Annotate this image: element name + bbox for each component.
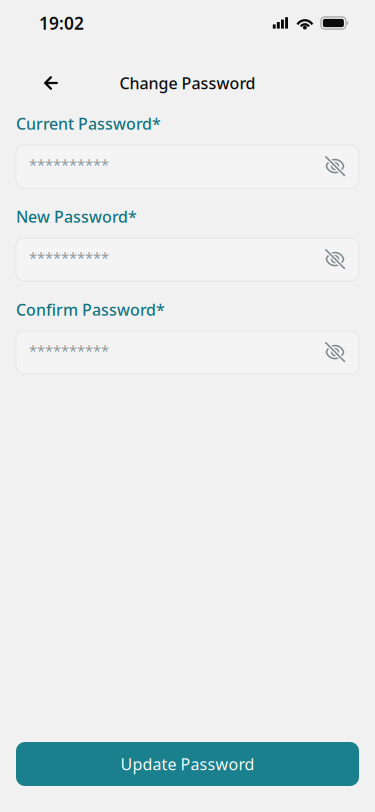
staticText: Change Password — [119, 72, 255, 94]
staticText: Confirm Password* — [16, 299, 165, 320]
staticText: 19:02 — [39, 11, 84, 34]
staticText: Update Password — [120, 753, 254, 775]
button[interactable]: Confirm Password* — [16, 331, 359, 374]
staticText: ********** — [29, 155, 109, 174]
staticText: New Password* — [16, 206, 137, 227]
button[interactable]: New Password* — [16, 238, 359, 281]
staticText: Current Password* — [16, 113, 161, 134]
button[interactable]: Show Current Password* — [313, 145, 359, 188]
button[interactable]: Back — [30, 64, 72, 102]
button[interactable]: Show New Password* — [313, 238, 359, 281]
button[interactable]: Show Confirm Password* — [313, 331, 359, 374]
staticText: ********** — [29, 341, 109, 360]
button[interactable]: Update Password — [16, 742, 359, 786]
button[interactable]: Current Password* — [16, 145, 359, 188]
staticText: ********** — [29, 248, 109, 267]
